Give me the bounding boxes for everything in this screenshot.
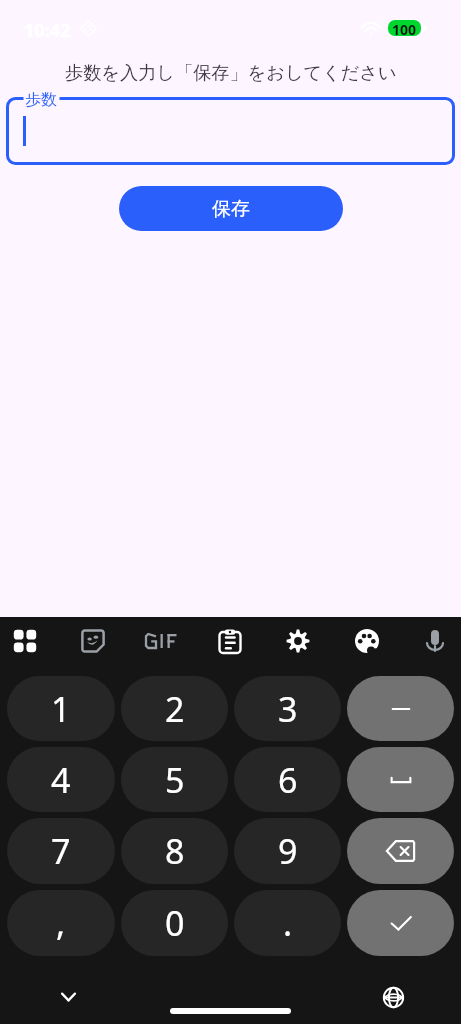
staticText: , [56, 900, 66, 946]
button[interactable]: 保存 [119, 186, 343, 231]
button[interactable]: Change language [373, 977, 413, 1017]
button[interactable]: 9 [234, 818, 341, 884]
button[interactable]: Enter [347, 890, 454, 956]
staticText: 保存 [212, 197, 250, 221]
button[interactable]: 0 [121, 890, 228, 956]
staticText: . [283, 900, 293, 946]
staticText: 3 [278, 686, 298, 732]
other: Enter [388, 910, 414, 936]
staticText: 7 [51, 828, 71, 874]
button[interactable]: , [7, 890, 115, 956]
button[interactable]: 5 [121, 747, 228, 812]
staticText: 9 [278, 828, 298, 874]
staticText: 歩数を入力し「保存」をおしてください [65, 61, 397, 84]
other: Backspace [386, 839, 415, 863]
button[interactable]: 1 [7, 676, 115, 741]
staticText: 0 [165, 900, 185, 946]
button[interactable]: 8 [121, 818, 228, 884]
button[interactable]: Minus [347, 676, 454, 741]
button[interactable]: Space [347, 747, 454, 812]
staticText: 4 [51, 757, 71, 803]
button[interactable]: . [234, 890, 341, 956]
other: Minus [388, 696, 414, 722]
staticText: 8 [165, 828, 185, 874]
button[interactable]: 3 [234, 676, 341, 741]
staticText: 100 [392, 20, 417, 36]
staticText: 5 [165, 757, 185, 803]
staticText: 6 [278, 757, 298, 803]
button[interactable]: 6 [234, 747, 341, 812]
button[interactable]: 2 [121, 676, 228, 741]
button[interactable]: GIF [140, 617, 184, 665]
staticText: 1 [51, 686, 71, 732]
other: Space [388, 767, 414, 793]
staticText: 10:42 [24, 18, 71, 43]
staticText: 歩数 [25, 90, 57, 110]
button[interactable]: 4 [7, 747, 115, 812]
staticText: 2 [165, 686, 185, 732]
button[interactable]: 7 [7, 818, 115, 884]
button[interactable]: Backspace [347, 818, 454, 884]
button[interactable]: Hide keyboard [48, 977, 88, 1017]
